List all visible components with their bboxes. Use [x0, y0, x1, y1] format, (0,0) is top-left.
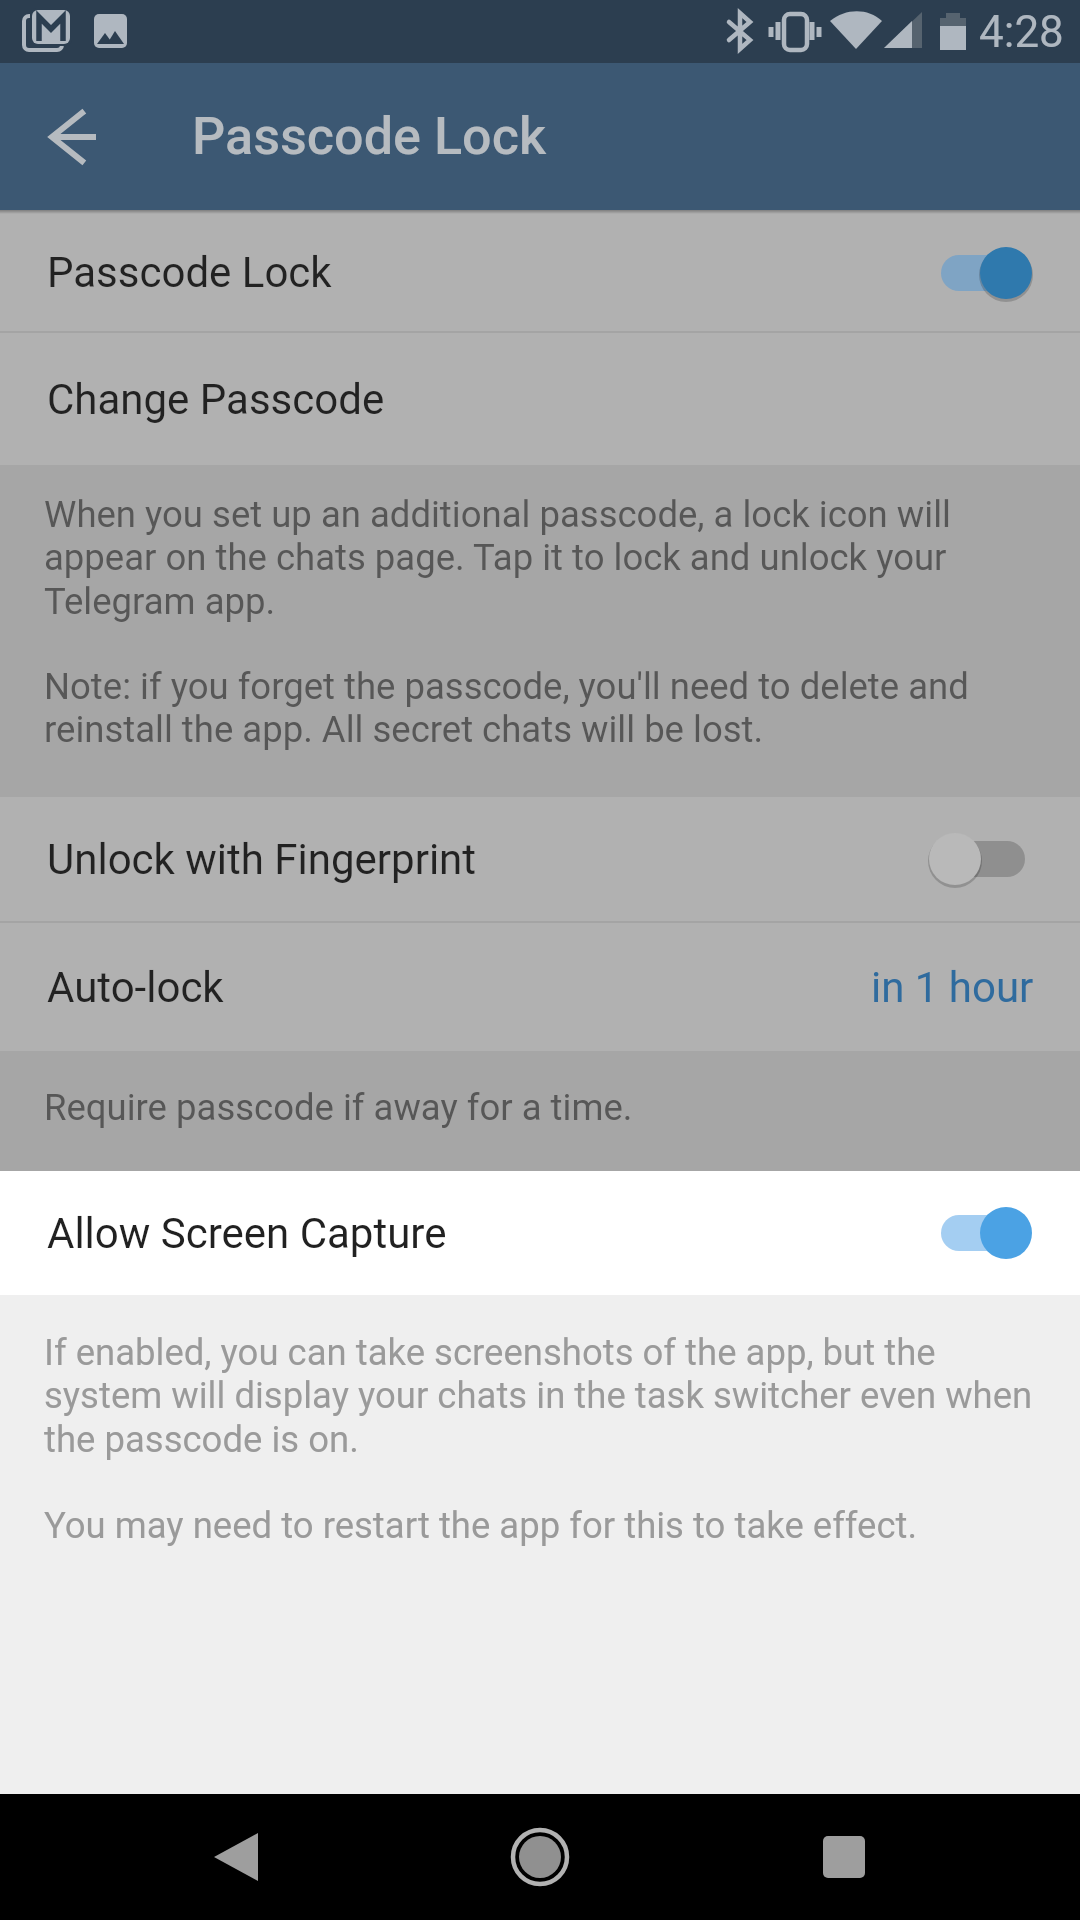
- staticText: in 1 hour: [871, 963, 1034, 1012]
- staticText: Change Passcode: [47, 375, 385, 424]
- button[interactable]: [794, 1807, 894, 1907]
- staticText: Note: if you forget the passcode, you'll…: [44, 665, 969, 751]
- staticText: Passcode Lock: [192, 106, 547, 167]
- button[interactable]: [490, 1807, 590, 1907]
- button[interactable]: Auto-lock: [0, 923, 1080, 1051]
- staticText: Auto-lock: [47, 963, 224, 1012]
- staticText: When you set up an additional passcode, …: [44, 493, 951, 623]
- staticText: 4:28: [979, 6, 1064, 58]
- button[interactable]: Passcode Lock: [0, 214, 1080, 331]
- staticText: Allow Screen Capture: [47, 1209, 447, 1258]
- staticText: Unlock with Fingerprint: [47, 835, 477, 884]
- button[interactable]: [24, 87, 124, 187]
- button[interactable]: Allow Screen Capture: [0, 1171, 1080, 1295]
- button[interactable]: Unlock with Fingerprint: [0, 797, 1080, 921]
- staticText: Passcode Lock: [47, 248, 332, 297]
- button[interactable]: Change Passcode: [0, 333, 1080, 465]
- staticText: If enabled, you can take screenshots of …: [44, 1331, 1033, 1461]
- button[interactable]: [186, 1807, 286, 1907]
- staticText: Require passcode if away for a time.: [44, 1086, 633, 1129]
- staticText: You may need to restart the app for this…: [44, 1504, 918, 1547]
